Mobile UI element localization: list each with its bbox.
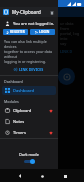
staticText: Timers (13, 130, 26, 135)
button[interactable]: Delete (48, 9, 55, 16)
button[interactable]: LOGIN (30, 29, 55, 35)
button[interactable]: REGISTER (3, 29, 28, 35)
button[interactable]: Add (58, 68, 75, 85)
button[interactable]: Timers (2, 128, 56, 137)
staticText: You are not logged in. (13, 21, 55, 26)
button[interactable]: LINK DEVICES (11, 66, 47, 73)
staticText: LINK DEVICES (19, 67, 44, 72)
button[interactable]: Recents (62, 173, 68, 179)
staticText: My-Clipboard (12, 9, 41, 15)
staticText: Dark mode (19, 152, 39, 157)
staticText: Clipboard (13, 108, 32, 113)
button[interactable]: Home (39, 173, 45, 179)
staticText: Modules (4, 99, 19, 104)
staticText: REGISTER (10, 30, 25, 34)
button[interactable]: Back (17, 173, 23, 179)
staticText: ur data from portal, log into say (60, 21, 81, 46)
staticText: LINK D (60, 49, 72, 54)
staticText: Dashboard (13, 88, 34, 93)
button[interactable]: Dashboard (2, 86, 56, 95)
button[interactable]: Notes (2, 117, 56, 126)
staticText: LOGIN (39, 30, 50, 34)
button[interactable] (24, 159, 35, 164)
staticText: You can also link multiple devices toget… (4, 39, 55, 64)
button[interactable]: Clipboard (2, 106, 56, 115)
staticText: Notes (13, 119, 25, 124)
staticText: Dashboard (4, 79, 23, 84)
